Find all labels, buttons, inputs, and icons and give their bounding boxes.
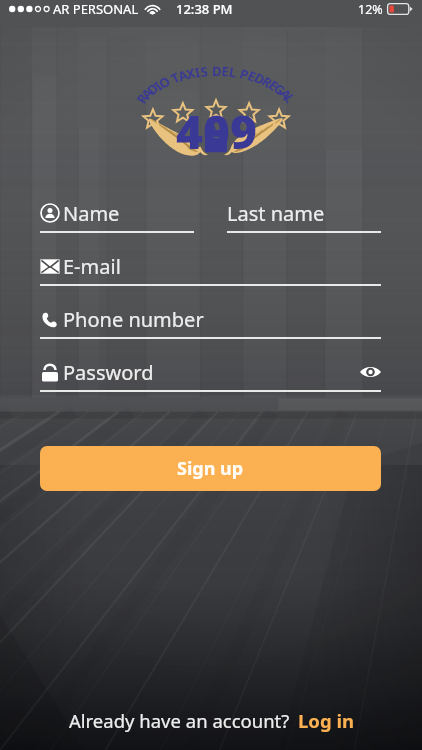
staticText: 12:38 PM xyxy=(176,0,233,18)
other: Show password xyxy=(360,365,381,379)
staticText: AR PERSONAL xyxy=(53,0,139,18)
staticText: Sign up xyxy=(177,456,244,481)
staticText: Already have an account? xyxy=(69,708,290,733)
staticText: 409 xyxy=(176,100,257,163)
button[interactable]: Log in xyxy=(298,708,354,733)
staticText: Name xyxy=(63,200,120,225)
staticText: Log in xyxy=(298,708,354,733)
staticText: Password xyxy=(63,359,154,384)
button[interactable]: Sign up xyxy=(40,446,381,491)
button[interactable]: Last name xyxy=(227,200,381,233)
button[interactable]: E-mail xyxy=(40,253,381,286)
staticText: Phone number xyxy=(63,306,204,331)
button[interactable]: Phone number xyxy=(40,306,381,339)
staticText: E-mail xyxy=(63,253,121,278)
button[interactable]: Password xyxy=(40,359,381,392)
staticText: 12% xyxy=(358,1,383,18)
button[interactable]: Name xyxy=(40,200,194,233)
staticText: Last name xyxy=(227,200,325,225)
